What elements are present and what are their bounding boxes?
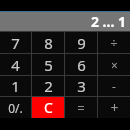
- button[interactable]: ×: [98, 54, 130, 75]
- staticText: 6: [77, 55, 86, 75]
- button[interactable]: 6: [65, 54, 97, 75]
- staticText: 1: [11, 76, 20, 96]
- staticText: =: [77, 99, 85, 117]
- button[interactable]: 7: [0, 32, 31, 53]
- staticText: 5: [44, 55, 53, 75]
- staticText: 0/.: [8, 100, 23, 116]
- staticText: 2: [44, 76, 53, 96]
- staticText: ÷: [110, 34, 118, 52]
- staticText: +: [110, 98, 119, 117]
- button[interactable]: -: [98, 76, 130, 96]
- button[interactable]: 0/.: [0, 97, 31, 118]
- button[interactable]: =: [65, 97, 97, 118]
- button[interactable]: 3: [65, 76, 97, 96]
- staticText: 2 ... 1: [90, 12, 126, 31]
- staticText: ×: [111, 57, 118, 73]
- staticText: -: [112, 78, 116, 94]
- button[interactable]: 1: [0, 76, 31, 96]
- staticText: 9: [77, 33, 86, 53]
- button[interactable]: 5: [32, 54, 64, 75]
- button[interactable]: Display: [0, 12, 130, 31]
- button[interactable]: 9: [65, 32, 97, 53]
- staticText: C: [44, 98, 53, 117]
- button[interactable]: ÷: [98, 32, 130, 53]
- staticText: 8: [44, 33, 53, 53]
- button[interactable]: 4: [0, 54, 31, 75]
- button[interactable]: 8: [32, 32, 64, 53]
- button[interactable]: C: [32, 97, 64, 118]
- button[interactable]: 2: [32, 76, 64, 96]
- button[interactable]: +: [98, 97, 130, 118]
- staticText: 3: [77, 76, 86, 96]
- staticText: 7: [11, 33, 20, 53]
- staticText: 4: [11, 55, 20, 75]
